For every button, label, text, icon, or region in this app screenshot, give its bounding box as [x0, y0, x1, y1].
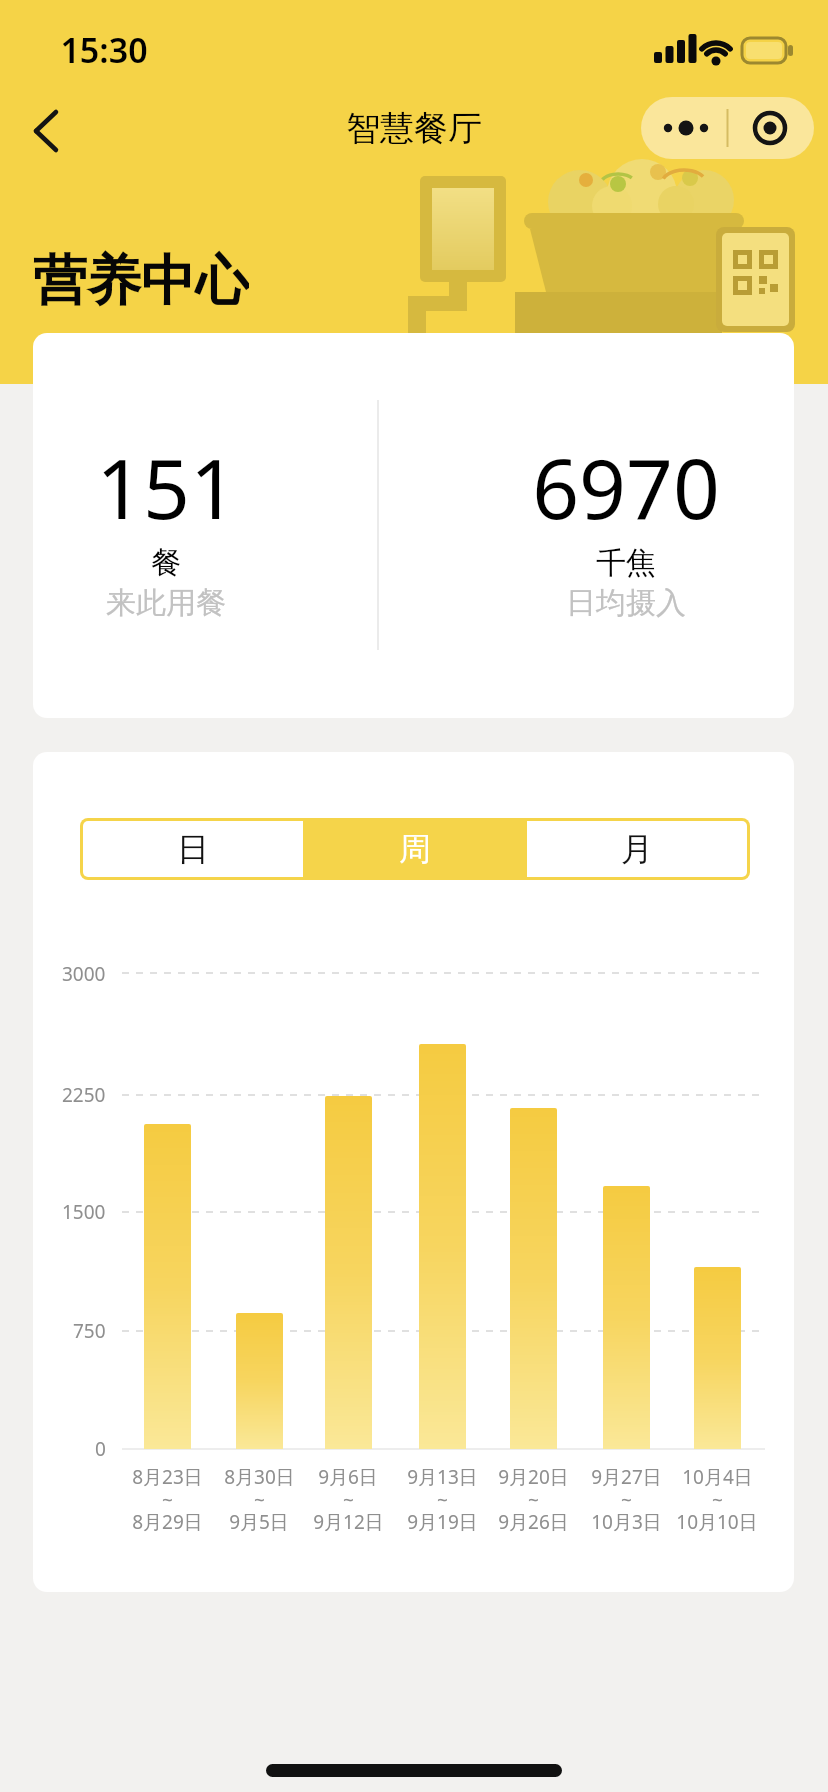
staticText: 9月20日 [498, 1464, 569, 1490]
staticText: 1500 [62, 1199, 106, 1225]
staticText: 2250 [62, 1082, 106, 1108]
staticText: 周 [399, 829, 431, 869]
staticText: 9月26日 [498, 1509, 569, 1535]
staticText: 8月30日 [224, 1464, 295, 1490]
staticText: 10月3日 [591, 1509, 662, 1535]
button[interactable]: 日 [83, 821, 303, 877]
staticText: ~ [343, 1487, 354, 1513]
staticText: 月 [621, 829, 653, 869]
button[interactable]: 月 [527, 821, 747, 877]
staticText: 0 [95, 1436, 106, 1462]
staticText: 9月6日 [318, 1464, 378, 1490]
staticText: ~ [528, 1487, 539, 1513]
staticText: 750 [73, 1318, 106, 1344]
staticText: ~ [162, 1487, 173, 1513]
staticText: 9月13日 [407, 1464, 478, 1490]
staticText: 9月27日 [591, 1464, 662, 1490]
staticText: 10月10日 [676, 1509, 758, 1535]
staticText: 来此用餐 [106, 584, 226, 622]
staticText: 8月29日 [132, 1509, 203, 1535]
staticText: 餐 [151, 544, 181, 582]
staticText: 千焦 [596, 544, 656, 582]
staticText: 6970 [532, 431, 720, 541]
staticText: 营养中心 [33, 247, 249, 307]
staticText: 10月4日 [682, 1464, 753, 1490]
staticText: ~ [712, 1487, 723, 1513]
staticText: 9月5日 [229, 1509, 289, 1535]
staticText: ~ [437, 1487, 448, 1513]
staticText: 9月19日 [407, 1509, 478, 1535]
button[interactable] [20, 108, 70, 154]
staticText: ~ [254, 1487, 265, 1513]
staticText: 日均摄入 [566, 584, 686, 622]
button[interactable]: 周 [306, 821, 524, 877]
staticText: 8月23日 [132, 1464, 203, 1490]
button[interactable] [641, 97, 727, 159]
staticText: 15:30 [60, 27, 148, 71]
staticText: 151 [96, 431, 237, 541]
staticText: 3000 [62, 961, 106, 987]
staticText: ~ [621, 1487, 632, 1513]
button[interactable] [728, 97, 814, 159]
staticText: 日 [177, 829, 209, 869]
staticText: 9月12日 [313, 1509, 384, 1535]
staticText: 智慧餐厅 [346, 107, 482, 150]
